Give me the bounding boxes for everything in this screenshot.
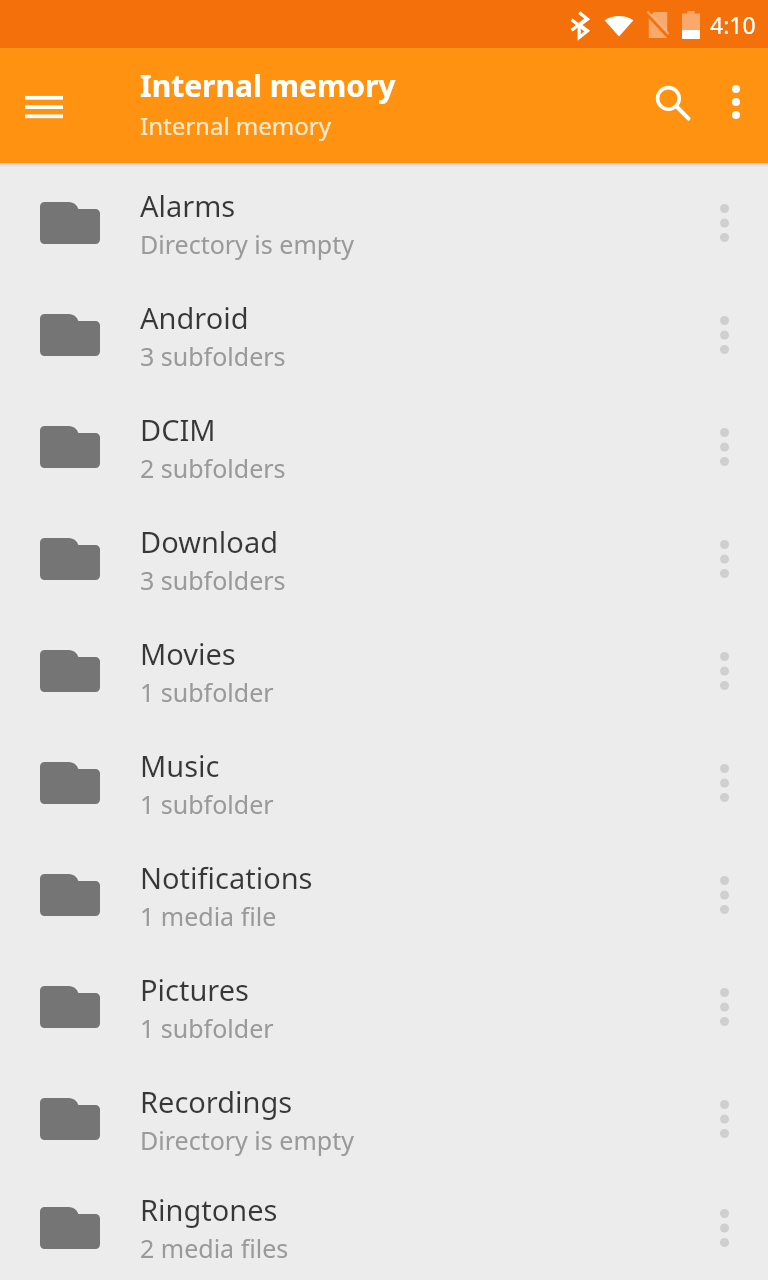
staticText: 1 subfolder [140, 675, 274, 709]
staticText: Android [140, 298, 249, 337]
staticText: 3 subfolders [140, 339, 286, 373]
staticText: Recordings [140, 1082, 293, 1121]
staticText: 2 media files [140, 1231, 289, 1265]
staticText: Internal memory [140, 65, 396, 106]
button[interactable]: Music [0, 727, 768, 839]
staticText: Directory is empty [140, 227, 354, 261]
staticText: Movies [140, 634, 236, 673]
staticText: Directory is empty [140, 1123, 354, 1157]
staticText: 1 subfolder [140, 787, 274, 821]
button[interactable]: More options for Music [698, 747, 750, 819]
staticText: 4:10 [710, 9, 756, 40]
staticText: 3 subfolders [140, 563, 286, 597]
button[interactable]: More options for Movies [698, 635, 750, 707]
button[interactable]: Pictures [0, 951, 768, 1063]
button[interactable]: More options for Android [698, 299, 750, 371]
staticText: 2 subfolders [140, 451, 286, 485]
staticText: Internal memory [140, 109, 331, 142]
button[interactable]: More options for Pictures [698, 971, 750, 1043]
staticText: Pictures [140, 970, 249, 1009]
staticText: 1 subfolder [140, 1011, 274, 1045]
button[interactable]: Android [0, 279, 768, 391]
staticText: Ringtones [140, 1190, 278, 1229]
button[interactable]: More options for Notifications [698, 859, 750, 931]
staticText: Music [140, 746, 220, 785]
staticText: DCIM [140, 410, 216, 449]
button[interactable]: More options [704, 70, 768, 134]
button[interactable]: Movies [0, 615, 768, 727]
button[interactable]: Open navigation menu [16, 78, 72, 134]
staticText: Notifications [140, 858, 313, 897]
staticText: 1 media file [140, 899, 277, 933]
button[interactable]: Notifications [0, 839, 768, 951]
button[interactable]: Search [640, 70, 704, 134]
button[interactable]: Ringtones [0, 1175, 768, 1280]
button[interactable]: More options for Ringtones [698, 1192, 750, 1264]
staticText: Download [140, 522, 278, 561]
button[interactable]: More options for Alarms [698, 187, 750, 259]
staticText: Alarms [140, 186, 236, 225]
button[interactable]: More options for Recordings [698, 1083, 750, 1155]
button[interactable]: Recordings [0, 1063, 768, 1175]
button[interactable]: Alarms [0, 167, 768, 279]
button[interactable]: Download [0, 503, 768, 615]
button[interactable]: More options for DCIM [698, 411, 750, 483]
button[interactable]: More options for Download [698, 523, 750, 595]
button[interactable]: DCIM [0, 391, 768, 503]
